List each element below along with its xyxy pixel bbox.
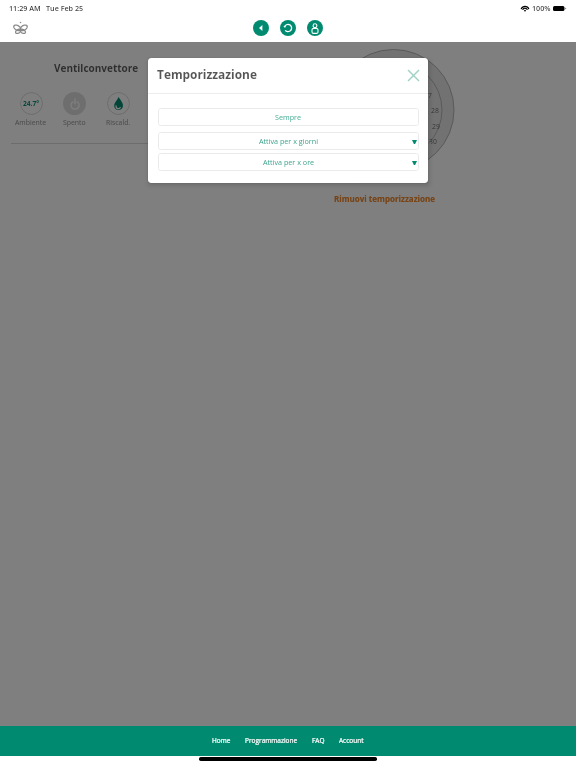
button[interactable]: Home logo <box>12 20 29 37</box>
staticText: Spento <box>63 118 86 127</box>
staticText: Ambiente <box>15 118 47 127</box>
button[interactable]: Rimuovi temporizzazione <box>334 193 435 204</box>
button[interactable]: Home <box>210 732 233 751</box>
staticText: Riscald. <box>106 118 131 127</box>
staticText: 27 <box>424 91 432 100</box>
staticText: 24.7° <box>23 99 40 108</box>
button[interactable]: Inverno <box>138 92 186 127</box>
button[interactable]: Account <box>307 20 323 36</box>
staticText: Temporizzazione <box>157 66 257 82</box>
staticText: Programmazione <box>245 736 298 745</box>
button[interactable]: Attiva per x giorni <box>158 132 419 150</box>
button[interactable]: Attiva per x ore <box>158 153 419 171</box>
button[interactable]: Riscald. <box>94 92 142 127</box>
staticText: 11:29 AM <box>9 3 41 13</box>
button[interactable]: Refresh <box>280 20 296 36</box>
staticText: 100% <box>532 3 551 13</box>
button[interactable]: FAQ <box>310 732 327 751</box>
button[interactable]: Back <box>253 20 269 36</box>
staticText: FAQ <box>312 736 325 745</box>
button[interactable]: Spento <box>50 92 98 127</box>
staticText: Attiva per x ore <box>263 157 315 167</box>
staticText: 29 <box>432 122 440 131</box>
staticText: 30 <box>429 137 437 146</box>
button[interactable]: 24.7° <box>7 92 55 127</box>
staticText: 28 <box>431 106 439 115</box>
staticText: Home <box>212 736 231 745</box>
button[interactable]: Programmazione <box>243 732 300 751</box>
button[interactable]: Account <box>337 732 366 751</box>
button[interactable]: Close <box>405 67 421 83</box>
button[interactable]: Sempre <box>158 108 419 126</box>
staticText: Sempre <box>275 112 302 122</box>
staticText: Ventilconvettore <box>54 61 139 75</box>
staticText: Tue Feb 25 <box>46 3 84 13</box>
staticText: Account <box>339 736 364 745</box>
staticText: Attiva per x giorni <box>259 136 319 146</box>
staticText: Inverno <box>150 118 175 127</box>
